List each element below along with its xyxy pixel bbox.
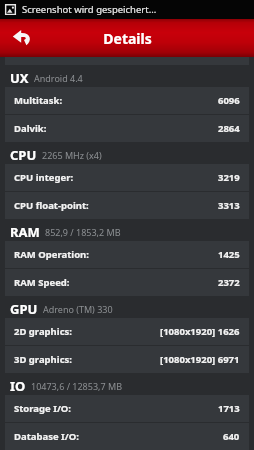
staticText: 1713 [218,402,240,415]
staticText: Storage I/O: [14,402,72,415]
staticText: 2864 [218,122,240,135]
staticText: RAM [10,223,40,241]
staticText: GPU [10,300,38,318]
button[interactable]: RAM Speed: [5,269,249,296]
button[interactable]: 2D graphics: [5,318,249,345]
button[interactable]: 3D graphics: [5,346,249,373]
button[interactable]: CPU integer: [5,164,249,191]
staticText: IO [10,377,26,395]
staticText: RAM Speed: [14,276,70,289]
staticText: Android 4.4 [34,72,83,84]
button[interactable]: Back [0,19,44,57]
staticText: [1080x1920] 6971 [160,353,240,366]
button[interactable]: CPU float-point: [5,192,249,219]
staticText: 6096 [218,94,240,107]
staticText: 3219 [218,171,240,184]
staticText: 2372 [218,276,240,289]
staticText: [1080x1920] 1626 [160,325,240,338]
button[interactable]: Storage I/O: [5,395,249,422]
staticText: UX [10,69,29,87]
staticText: 3D graphics: [14,353,72,366]
button[interactable]: Database I/O: [5,423,249,450]
staticText: 10473,6 / 12853,7 MB [31,380,122,392]
staticText: CPU [10,146,37,164]
button[interactable]: Dalvik: [5,115,249,142]
staticText: CPU float-point: [14,199,89,212]
staticText: CPU integer: [14,171,74,184]
staticText: RAM Operation: [14,248,89,261]
staticText: 2D graphics: [14,325,72,338]
staticText: Adreno (TM) 330 [43,303,113,315]
button[interactable]: Multitask: [5,87,249,114]
staticText: 852,9 / 1853,2 MB [45,226,121,238]
button[interactable]: RAM Operation: [5,241,249,268]
staticText: Dalvik: [14,122,47,135]
staticText: 1425 [218,248,240,261]
staticText: 640 [223,430,240,443]
staticText: Details [103,29,152,48]
staticText: Screenshot wird gespeichert... [22,3,157,16]
staticText: 2265 MHz (x4) [42,149,102,161]
staticText: Database I/O: [14,430,79,443]
staticText: Multitask: [14,94,63,107]
staticText: 3313 [218,199,240,212]
